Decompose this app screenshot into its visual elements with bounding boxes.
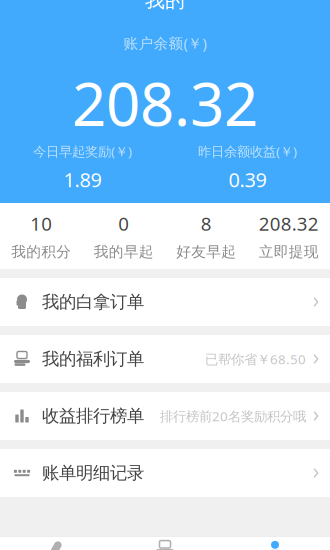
- staticText: 今日早起奖励(￥): [33, 142, 132, 160]
- button[interactable]: 我的: [220, 537, 330, 550]
- staticText: 好友早起: [176, 243, 236, 261]
- staticText: 1.89: [63, 166, 101, 193]
- staticText: 10: [30, 211, 52, 236]
- button[interactable]: 我的白拿订单: [0, 278, 330, 326]
- button[interactable]: 208.32: [247, 203, 330, 269]
- staticText: 立即提现: [259, 243, 319, 261]
- staticText: 8: [201, 211, 212, 236]
- staticText: 昨日余额收益(￥): [198, 142, 297, 160]
- staticText: 收益排行榜单: [42, 405, 144, 427]
- button[interactable]: 0: [82, 203, 165, 269]
- button[interactable]: 福利: [110, 537, 220, 550]
- button[interactable]: 8: [165, 203, 247, 269]
- staticText: 0: [118, 211, 129, 236]
- staticText: 0.39: [228, 166, 266, 193]
- button[interactable]: 我的福利订单: [0, 335, 330, 383]
- button[interactable]: 早起: [0, 537, 110, 550]
- staticText: 账单明细记录: [42, 462, 144, 484]
- staticText: 我的: [145, 0, 185, 13]
- staticText: 208.32: [72, 63, 258, 142]
- button[interactable]: 收益排行榜单: [0, 392, 330, 440]
- button[interactable]: 10: [0, 203, 82, 269]
- staticText: 我的福利订单: [42, 348, 144, 370]
- staticText: 我的早起: [94, 243, 154, 261]
- staticText: 208.32: [259, 211, 319, 236]
- staticText: 我的白拿订单: [42, 291, 144, 313]
- staticText: 排行榜前20名奖励积分哦: [160, 407, 306, 425]
- button[interactable]: 账单明细记录: [0, 449, 330, 497]
- staticText: 我的积分: [11, 243, 71, 261]
- staticText: 已帮你省￥68.50: [205, 350, 306, 368]
- staticText: 账户余额(￥): [123, 33, 206, 53]
